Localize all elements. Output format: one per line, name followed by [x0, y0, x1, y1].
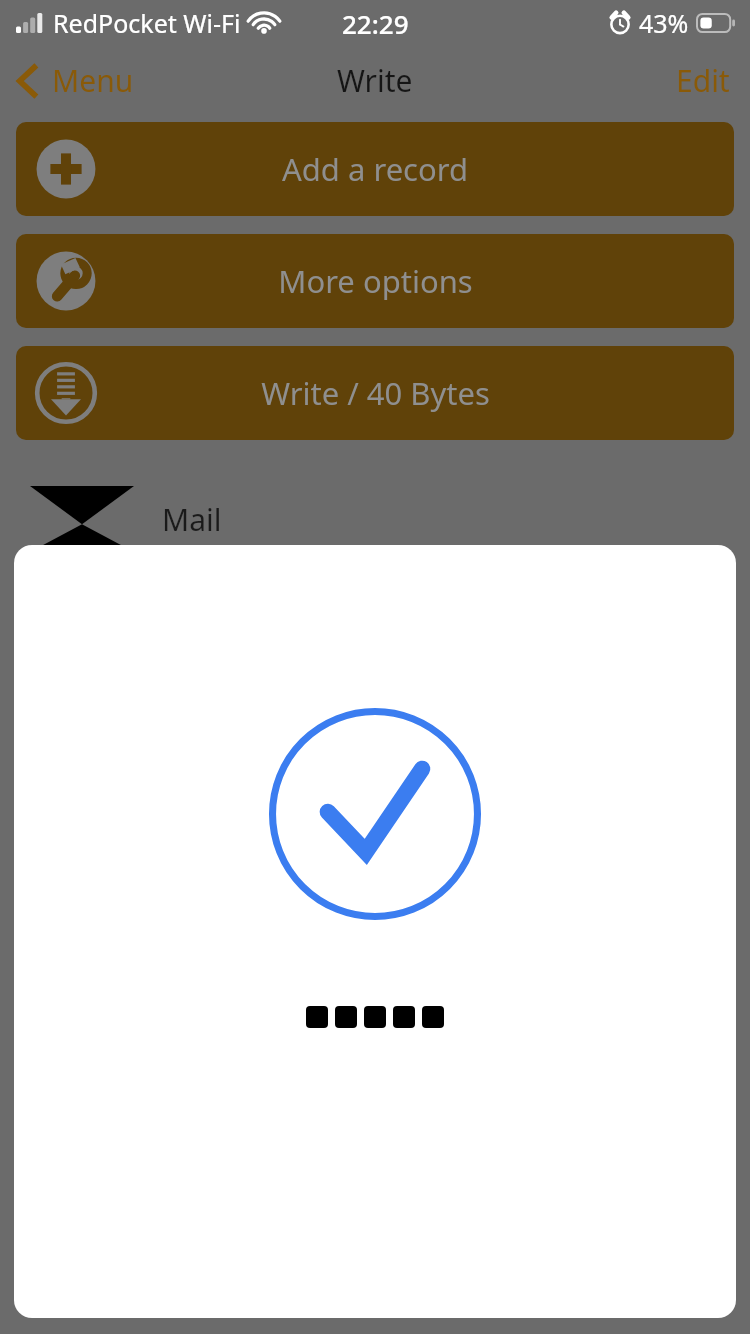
staticText: Mail — [162, 499, 222, 540]
staticText: 22:29 — [342, 6, 409, 41]
staticText: Add a record — [282, 148, 468, 190]
staticText: More options — [278, 260, 473, 302]
button[interactable]: More options — [16, 234, 734, 328]
staticText: Write / 40 Bytes — [261, 372, 490, 414]
button[interactable]: Mail — [0, 484, 750, 554]
button[interactable]: Add a record — [16, 122, 734, 216]
staticText: Menu — [52, 60, 134, 101]
button[interactable]: Menu — [0, 54, 146, 107]
staticText: Write — [337, 60, 413, 101]
staticText: 43% — [639, 6, 689, 40]
staticText: RedPocket Wi-Fi — [53, 6, 241, 40]
button[interactable]: Write / 40 Bytes — [16, 346, 734, 440]
staticText: Edit — [676, 60, 730, 101]
button[interactable]: Edit — [656, 52, 750, 109]
